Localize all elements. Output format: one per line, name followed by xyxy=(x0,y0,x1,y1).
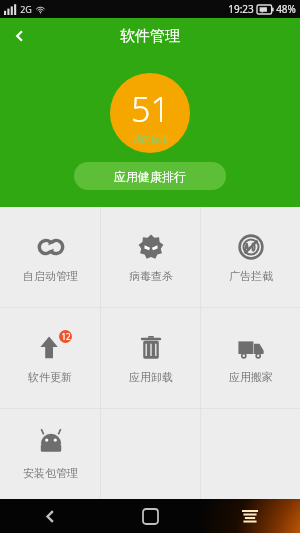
staticText: 软件管理 xyxy=(120,27,180,46)
button[interactable]: Back xyxy=(0,499,100,533)
button[interactable]: 应用卸载 xyxy=(101,308,200,408)
button[interactable]: 自启动管理 xyxy=(0,207,100,307)
staticText: 病毒查杀 xyxy=(129,269,173,283)
button[interactable]: 安装包管理 xyxy=(0,409,100,499)
staticText: 19:23 xyxy=(228,2,254,16)
button[interactable]: 12 xyxy=(0,308,100,408)
staticText: 应用卸载 xyxy=(129,370,173,384)
button[interactable]: Menu xyxy=(200,499,300,533)
staticText: 自启动管理 xyxy=(23,269,78,283)
staticText: 51 xyxy=(131,86,170,132)
button[interactable]: Home xyxy=(100,499,200,533)
staticText: 安装包管理 xyxy=(23,466,78,480)
staticText: 应用搬家 xyxy=(229,370,273,384)
staticText: 应用健康排行 xyxy=(114,169,186,184)
staticText: 12 xyxy=(61,331,71,342)
button[interactable]: 应用健康排行 xyxy=(74,162,226,190)
staticText: 48% xyxy=(276,2,296,16)
button[interactable]: Back xyxy=(0,18,40,54)
staticText: 我的应用 xyxy=(133,133,169,144)
staticText: 软件更新 xyxy=(28,370,72,384)
staticText: 2G xyxy=(20,3,32,15)
button[interactable]: 应用搬家 xyxy=(201,308,300,408)
staticText: 广告拦截 xyxy=(229,269,273,283)
button[interactable]: 广告拦截 xyxy=(201,207,300,307)
button[interactable]: 病毒查杀 xyxy=(101,207,200,307)
